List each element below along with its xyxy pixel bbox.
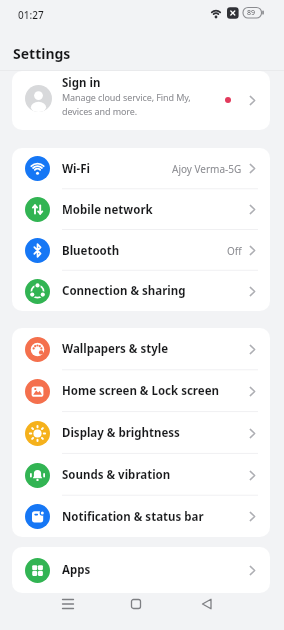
button[interactable]: Apps xyxy=(12,547,270,593)
staticText: Mobile network xyxy=(62,202,153,218)
button[interactable]: Mobile network xyxy=(12,189,270,230)
button[interactable]: Display & brightness xyxy=(12,412,270,454)
staticText: Sounds & vibration xyxy=(62,467,171,483)
button[interactable] xyxy=(54,590,82,618)
button[interactable]: Wallpapers & style xyxy=(12,328,270,370)
button[interactable] xyxy=(193,590,221,618)
button[interactable]: Sign in xyxy=(12,71,270,130)
staticText: Bluetooth xyxy=(62,243,120,259)
staticText: Wi-Fi xyxy=(62,161,90,177)
staticText: Sign in xyxy=(62,75,101,91)
button[interactable]: Home screen & Lock screen xyxy=(12,370,270,412)
staticText: Connection & sharing xyxy=(62,283,186,299)
staticText: Off xyxy=(227,244,242,258)
staticText: Display & brightness xyxy=(62,425,180,441)
button[interactable]: Sounds & vibration xyxy=(12,454,270,496)
staticText: Ajoy Verma-5G xyxy=(172,162,242,176)
staticText: Wallpapers & style xyxy=(62,341,169,357)
staticText: Settings xyxy=(13,44,71,63)
staticText: Home screen & Lock screen xyxy=(62,383,219,399)
staticText: Manage cloud service, Find My, devices a… xyxy=(62,91,191,117)
button[interactable]: Bluetooth xyxy=(12,230,270,271)
button[interactable]: Connection & sharing xyxy=(12,271,270,311)
button[interactable] xyxy=(122,590,150,618)
staticText: 01:27 xyxy=(18,8,44,22)
button[interactable]: Wi-Fi xyxy=(12,148,270,189)
staticText: 89 xyxy=(247,8,256,18)
staticText: Apps xyxy=(62,562,91,578)
button[interactable]: Notification & status bar xyxy=(12,496,270,537)
staticText: Notification & status bar xyxy=(62,509,204,525)
